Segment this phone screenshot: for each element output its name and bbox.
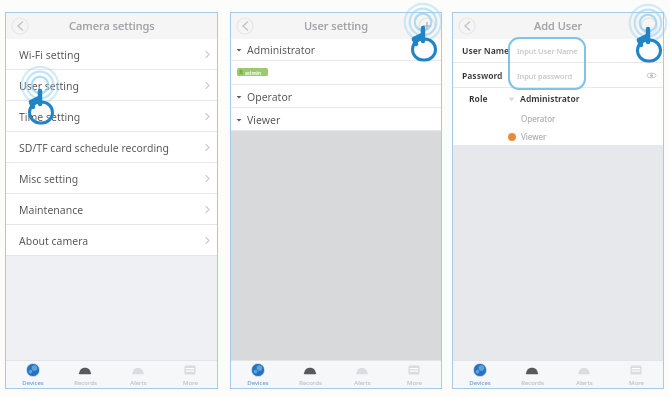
staticText: Records bbox=[521, 379, 544, 387]
button[interactable]: Maintenance bbox=[5, 194, 218, 225]
staticText: Operator bbox=[247, 90, 293, 104]
staticText: Devices bbox=[247, 379, 269, 387]
button[interactable]: Records bbox=[286, 360, 334, 389]
staticText: Alerts bbox=[576, 379, 593, 387]
staticText: Wi-Fi setting bbox=[19, 48, 80, 62]
staticText: Alerts bbox=[354, 379, 371, 387]
button[interactable]: SD/TF card schedule recording bbox=[5, 132, 218, 163]
button[interactable]: Devices bbox=[456, 360, 504, 389]
button[interactable]: Wi-Fi setting bbox=[5, 39, 218, 70]
staticText: More bbox=[407, 379, 422, 387]
staticText: More bbox=[629, 379, 644, 387]
button[interactable]: Save bbox=[640, 17, 658, 35]
staticText: Administrator bbox=[247, 43, 316, 57]
button[interactable]: About camera bbox=[5, 225, 218, 256]
button[interactable]: User Name bbox=[452, 39, 664, 63]
staticText: Time setting bbox=[19, 110, 81, 124]
button[interactable]: Add user bbox=[418, 17, 436, 35]
button[interactable]: Alerts bbox=[338, 360, 386, 389]
staticText: Administrator bbox=[520, 93, 580, 105]
button[interactable]: Alerts bbox=[114, 360, 162, 389]
button[interactable]: admin bbox=[230, 61, 442, 85]
staticText: Devices bbox=[469, 379, 491, 387]
staticText: admin bbox=[245, 69, 262, 76]
button[interactable]: Devices bbox=[234, 360, 282, 389]
staticText: More bbox=[183, 379, 198, 387]
staticText: About camera bbox=[19, 234, 89, 248]
staticText: Viewer bbox=[247, 113, 281, 127]
staticText: User setting bbox=[19, 79, 79, 93]
button[interactable]: More bbox=[612, 360, 660, 389]
button[interactable]: Back bbox=[236, 17, 254, 35]
button[interactable]: Administrator bbox=[230, 39, 442, 61]
button[interactable]: Operator bbox=[505, 109, 593, 128]
button[interactable]: Time setting bbox=[5, 101, 218, 132]
staticText: Alerts bbox=[130, 379, 147, 387]
button[interactable]: Back bbox=[458, 17, 476, 35]
button[interactable]: Alerts bbox=[560, 360, 608, 389]
button[interactable]: Viewer bbox=[230, 108, 442, 131]
staticText: Operator bbox=[521, 113, 556, 124]
staticText: Role bbox=[469, 93, 488, 105]
staticText: Input User Name bbox=[517, 46, 578, 56]
button[interactable]: Administrator bbox=[505, 88, 593, 109]
staticText: Records bbox=[74, 379, 97, 387]
staticText: Records bbox=[299, 379, 322, 387]
button[interactable]: Password bbox=[452, 63, 664, 88]
staticText: User setting bbox=[304, 18, 369, 33]
button[interactable]: Records bbox=[508, 360, 556, 389]
staticText: Add User bbox=[534, 18, 583, 33]
staticText: Camera settings bbox=[69, 18, 155, 33]
staticText: SD/TF card schedule recording bbox=[19, 141, 170, 155]
staticText: Viewer bbox=[521, 131, 547, 142]
button[interactable]: More bbox=[390, 360, 438, 389]
staticText: Devices bbox=[22, 379, 44, 387]
button[interactable]: Operator bbox=[230, 85, 442, 108]
staticText: User Name bbox=[462, 45, 510, 57]
button[interactable]: More bbox=[166, 360, 214, 389]
button[interactable]: Records bbox=[61, 360, 109, 389]
button[interactable]: Viewer bbox=[505, 128, 593, 145]
staticText: Misc setting bbox=[19, 172, 79, 186]
button[interactable]: Devices bbox=[9, 360, 57, 389]
staticText: Input password bbox=[517, 71, 573, 81]
button[interactable]: User setting bbox=[5, 70, 218, 101]
staticText: Maintenance bbox=[19, 203, 84, 217]
button[interactable]: Misc setting bbox=[5, 163, 218, 194]
staticText: Password bbox=[462, 70, 503, 82]
button[interactable]: Back bbox=[11, 17, 29, 35]
